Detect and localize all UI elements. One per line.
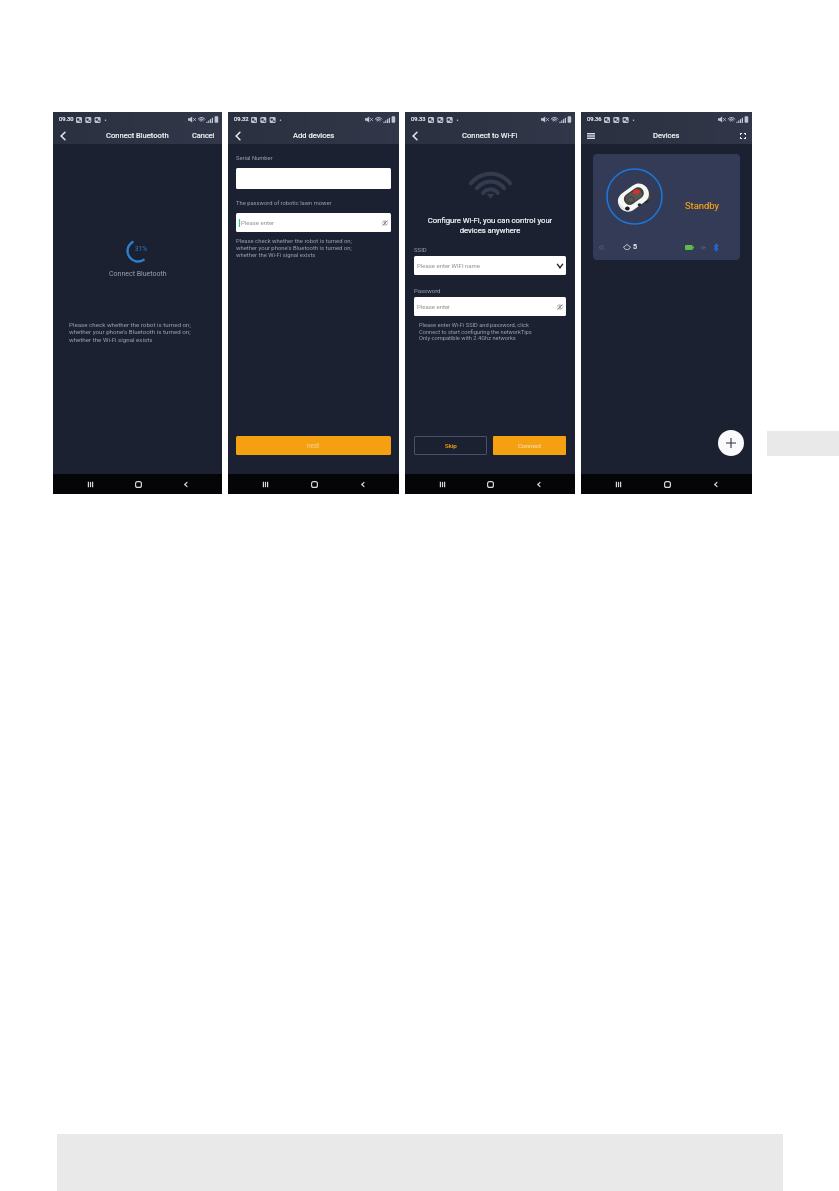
button[interactable]: Skip xyxy=(414,436,487,455)
staticText: 09.32 xyxy=(234,116,249,123)
staticText: 09.30 xyxy=(59,116,74,123)
button[interactable]: Please enter WIFI name xyxy=(414,256,566,275)
staticText: Cancel xyxy=(192,131,215,140)
button[interactable]: Recents xyxy=(607,474,629,494)
staticText: Please check whether the robot is turned… xyxy=(69,321,209,344)
button[interactable]: Back xyxy=(53,127,72,144)
staticText: Connect Bluetooth xyxy=(106,131,169,140)
button[interactable]: Back xyxy=(527,474,549,494)
button[interactable]: Back xyxy=(228,127,247,144)
staticText: Password xyxy=(414,287,441,294)
button[interactable]: Home xyxy=(127,474,149,494)
button[interactable]: Please enter xyxy=(236,213,391,232)
staticText: Skip xyxy=(445,442,457,449)
button[interactable]: Recents xyxy=(431,474,453,494)
button[interactable] xyxy=(236,168,391,189)
button[interactable]: Add device xyxy=(718,430,744,456)
staticText: Please enter xyxy=(417,303,451,310)
staticText: Please enter WIFI name xyxy=(417,262,481,269)
button[interactable]: Scan xyxy=(734,127,752,144)
button[interactable]: Connect xyxy=(493,436,566,455)
staticText: Please enter xyxy=(241,219,275,226)
button[interactable]: Home xyxy=(656,474,678,494)
staticText: Configure Wi-Fi, you can control your de… xyxy=(414,216,566,235)
button[interactable]: Standby xyxy=(593,154,740,260)
staticText: 31% xyxy=(135,245,148,253)
staticText: 5 xyxy=(633,243,637,251)
staticText: SSID xyxy=(414,246,427,253)
staticText: Connect xyxy=(518,442,541,449)
staticText: 09.36 xyxy=(587,116,602,123)
staticText: next xyxy=(307,442,320,450)
button[interactable]: Cancel xyxy=(187,127,222,144)
staticText: Please enter Wi-Fi SSID and password, cl… xyxy=(419,322,532,341)
button[interactable]: Back xyxy=(174,474,196,494)
staticText: 09.33 xyxy=(411,116,426,123)
button[interactable]: Recents xyxy=(254,474,276,494)
button[interactable]: Back xyxy=(351,474,373,494)
button[interactable]: Home xyxy=(479,474,501,494)
button[interactable]: Recents xyxy=(79,474,101,494)
staticText: Connect to Wi-Fi xyxy=(462,131,518,140)
staticText: Add devices xyxy=(293,131,335,140)
staticText: The password of robotic lawn mower xyxy=(236,200,332,207)
button[interactable]: Back xyxy=(704,474,726,494)
staticText: Connect Bluetooth xyxy=(109,270,167,278)
button[interactable]: Menu xyxy=(581,127,600,144)
button[interactable]: next xyxy=(236,436,391,455)
staticText: Standby xyxy=(685,200,719,211)
button[interactable]: Back xyxy=(405,127,424,144)
staticText: Please check whether the robot is turned… xyxy=(236,238,352,259)
staticText: Devices xyxy=(653,131,680,140)
button[interactable]: Please enter xyxy=(414,297,566,316)
staticText: Serial Number xyxy=(236,155,273,162)
button[interactable]: Home xyxy=(303,474,325,494)
